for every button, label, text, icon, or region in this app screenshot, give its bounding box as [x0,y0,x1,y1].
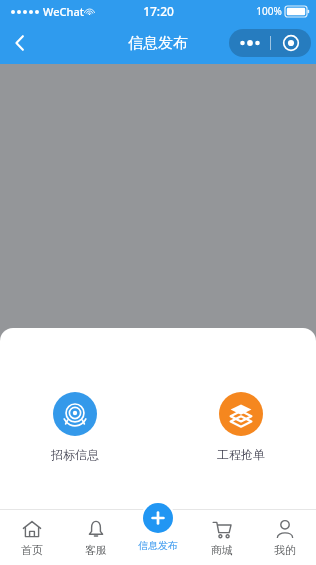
button[interactable]: 我的 [253,512,316,563]
staticText: 首页 [21,543,43,557]
staticText: WeChat [43,4,84,19]
staticText: 信息发布 [128,34,188,53]
button[interactable]: 信息发布 [127,501,189,552]
staticText: 工程抢单 [217,447,265,462]
button[interactable]: 菜单 [229,29,311,57]
staticText: 客服 [85,543,107,557]
button[interactable]: 客服 [64,512,127,563]
staticText: 100% [256,4,282,18]
staticText: 商城 [211,543,233,557]
button[interactable]: 首页 [0,512,64,563]
button[interactable]: 返回 [0,23,40,63]
staticText: 招标信息 [51,447,99,462]
staticText: 信息发布 [138,539,178,552]
button[interactable]: 工程抢单 [205,390,277,464]
button[interactable]: 商城 [190,512,253,563]
staticText: 17:20 [143,3,174,19]
staticText: 我的 [274,543,296,557]
button[interactable]: 招标信息 [39,390,111,464]
